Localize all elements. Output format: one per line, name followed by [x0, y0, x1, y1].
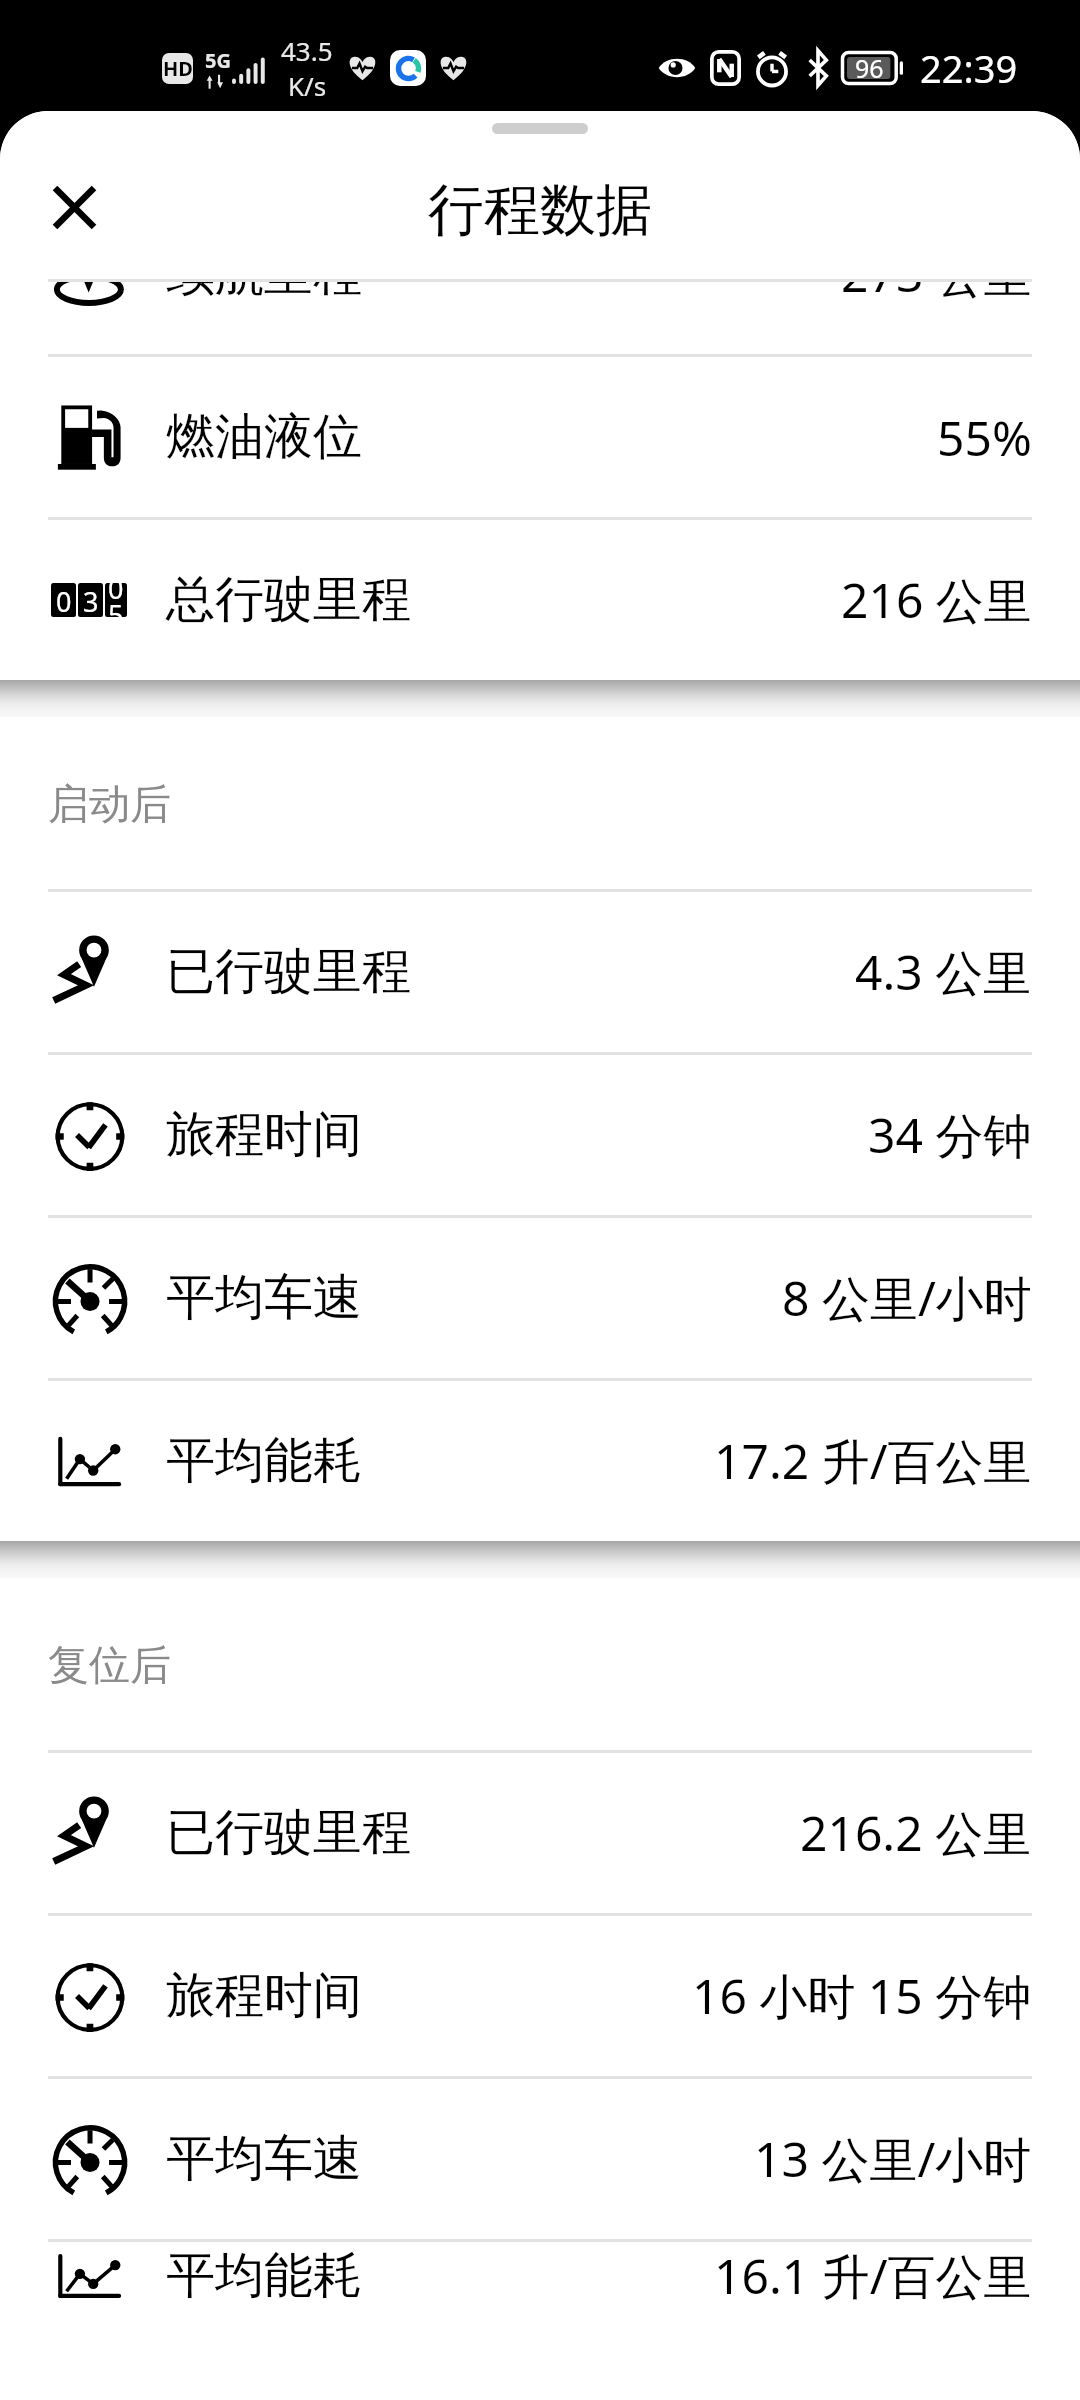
staticText: 旅程时间	[166, 1965, 362, 2027]
button[interactable]: 旅程时间	[0, 1055, 1080, 1215]
staticText: 启动后	[48, 779, 171, 831]
staticText: 行程数据	[428, 175, 652, 246]
staticText: 13 公里/小时	[754, 2126, 1032, 2192]
staticText: 平均能耗	[166, 1430, 362, 1492]
staticText: 16.1 升/百公里	[714, 2243, 1032, 2309]
staticText: 旅程时间	[166, 1104, 362, 1166]
staticText: 273 公里	[841, 282, 1032, 307]
staticText: 总行驶里程	[166, 569, 411, 631]
button[interactable]: 平均能耗	[0, 1381, 1080, 1541]
button[interactable]: 旅程时间	[0, 1916, 1080, 2076]
staticText: 22:39	[920, 42, 1018, 94]
button[interactable]: 已行驶里程	[0, 892, 1080, 1052]
staticText: 平均车速	[166, 2128, 362, 2190]
staticText: 16 小时 15 分钟	[692, 1963, 1032, 2029]
staticText: 5G	[205, 47, 231, 74]
staticText: 96	[855, 51, 884, 85]
staticText: 续航里程	[166, 282, 362, 305]
button[interactable]: 已行驶里程	[0, 1753, 1080, 1913]
button[interactable]: 平均车速	[0, 1218, 1080, 1378]
staticText: 燃油液位	[166, 406, 362, 468]
staticText: 已行驶里程	[166, 1802, 411, 1864]
staticText: 216 公里	[841, 567, 1032, 633]
button[interactable]: Close	[30, 163, 118, 251]
staticText: 0	[56, 583, 72, 617]
staticText: 4.3 公里	[855, 939, 1032, 1005]
staticText: 平均车速	[166, 1267, 362, 1329]
button[interactable]: 平均能耗	[0, 2242, 1080, 2309]
staticText: 17.2 升/百公里	[714, 1428, 1032, 1494]
staticText: 0	[108, 583, 124, 604]
staticText: 3	[83, 583, 99, 617]
staticText: 43.5	[281, 33, 333, 68]
staticText: 55%	[937, 405, 1032, 470]
staticText: 34 分钟	[868, 1102, 1032, 1168]
staticText: 8 公里/小时	[782, 1265, 1032, 1331]
staticText: 216.2 公里	[800, 1800, 1032, 1866]
staticText: 已行驶里程	[166, 941, 411, 1003]
staticText: 5	[108, 596, 124, 617]
button[interactable]: 平均车速	[0, 2079, 1080, 2239]
staticText: K/s	[288, 68, 327, 103]
button[interactable]: 续航里程	[0, 282, 1080, 354]
button[interactable]: 燃油液位	[0, 357, 1080, 517]
staticText: 平均能耗	[166, 2245, 362, 2307]
staticText: 复位后	[48, 1640, 171, 1692]
staticText: HD	[163, 55, 193, 82]
button[interactable]: 0	[0, 520, 1080, 680]
